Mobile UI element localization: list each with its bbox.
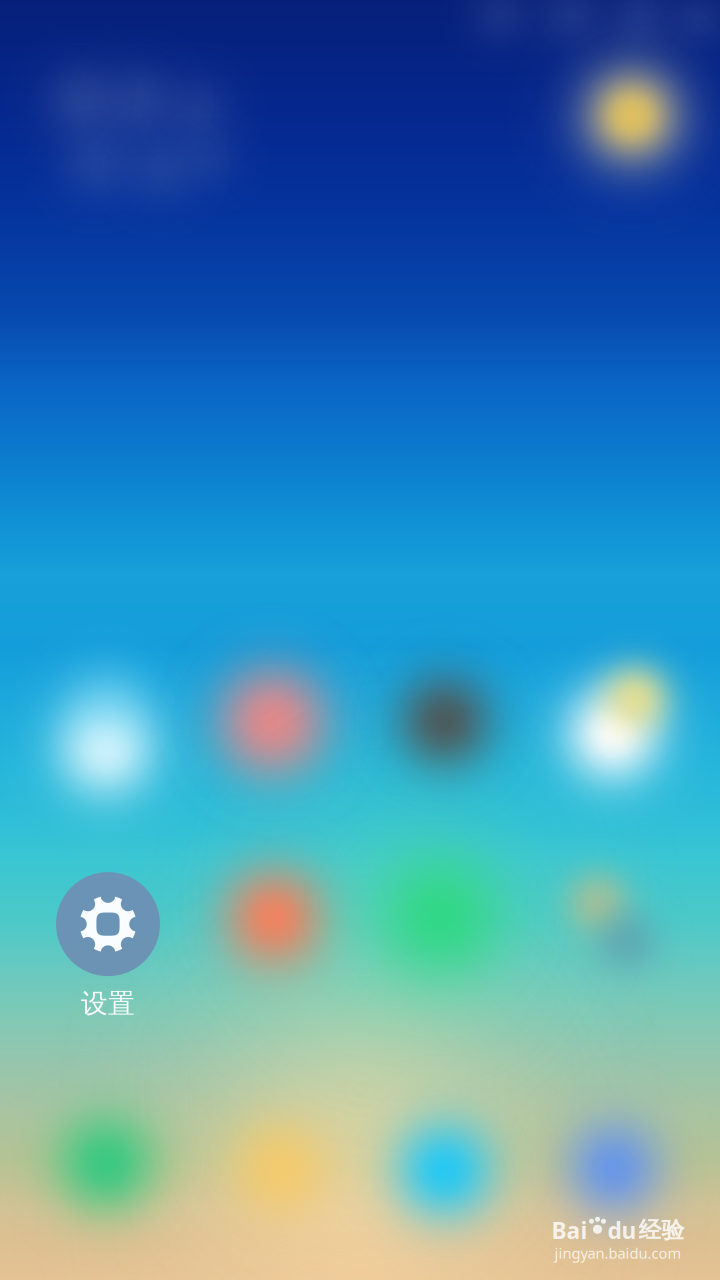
staticText: du [607, 1215, 636, 1245]
staticText: 设置 [81, 987, 135, 1020]
button[interactable]: 设置 [23, 861, 193, 1031]
staticText: Bai [551, 1215, 587, 1245]
staticText: jingyan.baidu.com [554, 1243, 681, 1263]
staticText: 经验 [638, 1216, 684, 1244]
